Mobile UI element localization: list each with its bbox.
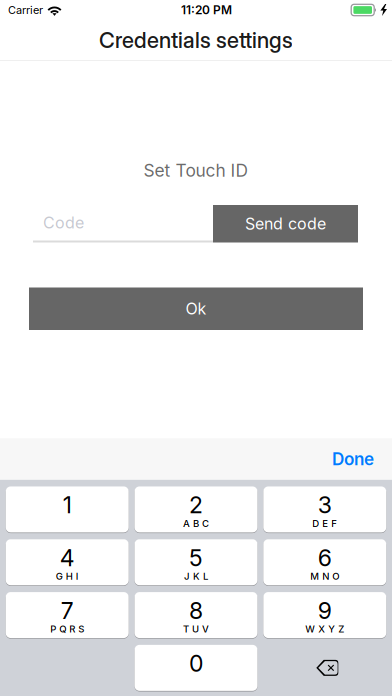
staticText: G H I bbox=[56, 570, 79, 582]
staticText: D E F bbox=[312, 518, 337, 529]
staticText: Credentials settings bbox=[99, 27, 293, 53]
staticText: M N O bbox=[310, 570, 339, 582]
staticText: Ok bbox=[185, 299, 206, 318]
button[interactable]: 7 bbox=[6, 591, 129, 639]
button[interactable]: 8 bbox=[134, 591, 257, 639]
button[interactable]: 9 bbox=[263, 591, 386, 639]
staticText: Send code bbox=[245, 214, 326, 233]
button[interactable]: 4 bbox=[6, 539, 129, 586]
staticText: 7 bbox=[61, 597, 74, 624]
button[interactable]: 1 bbox=[6, 486, 129, 533]
staticText: 5 bbox=[189, 544, 203, 572]
button[interactable]: Delete bbox=[263, 644, 386, 691]
staticText: 2 bbox=[189, 491, 203, 519]
staticText: T U V bbox=[183, 623, 209, 635]
staticText: 0 bbox=[189, 649, 203, 677]
staticText: Done bbox=[332, 449, 374, 469]
button[interactable]: 0 bbox=[134, 644, 257, 691]
staticText: 6 bbox=[318, 544, 332, 572]
staticText: P Q R S bbox=[50, 623, 84, 635]
staticText: Code bbox=[43, 213, 84, 232]
staticText: 8 bbox=[189, 597, 203, 624]
staticText: 3 bbox=[318, 491, 332, 519]
staticText: J K L bbox=[184, 570, 208, 582]
staticText: 11:20 PM bbox=[181, 3, 232, 17]
button[interactable]: Send code bbox=[213, 205, 358, 242]
button[interactable]: 5 bbox=[134, 539, 257, 586]
staticText: Carrier bbox=[8, 3, 43, 17]
button[interactable]: Done bbox=[316, 439, 392, 479]
button[interactable]: 3 bbox=[263, 486, 386, 533]
staticText: 4 bbox=[60, 544, 75, 572]
button[interactable]: Ok bbox=[29, 287, 363, 330]
staticText: Set Touch ID bbox=[143, 160, 248, 181]
button[interactable]: 2 bbox=[134, 486, 257, 533]
staticText: 9 bbox=[318, 597, 332, 624]
staticText: A B C bbox=[183, 518, 209, 529]
staticText: 1 bbox=[63, 491, 72, 519]
staticText: W X Y Z bbox=[305, 623, 344, 635]
button[interactable]: 6 bbox=[263, 539, 386, 586]
